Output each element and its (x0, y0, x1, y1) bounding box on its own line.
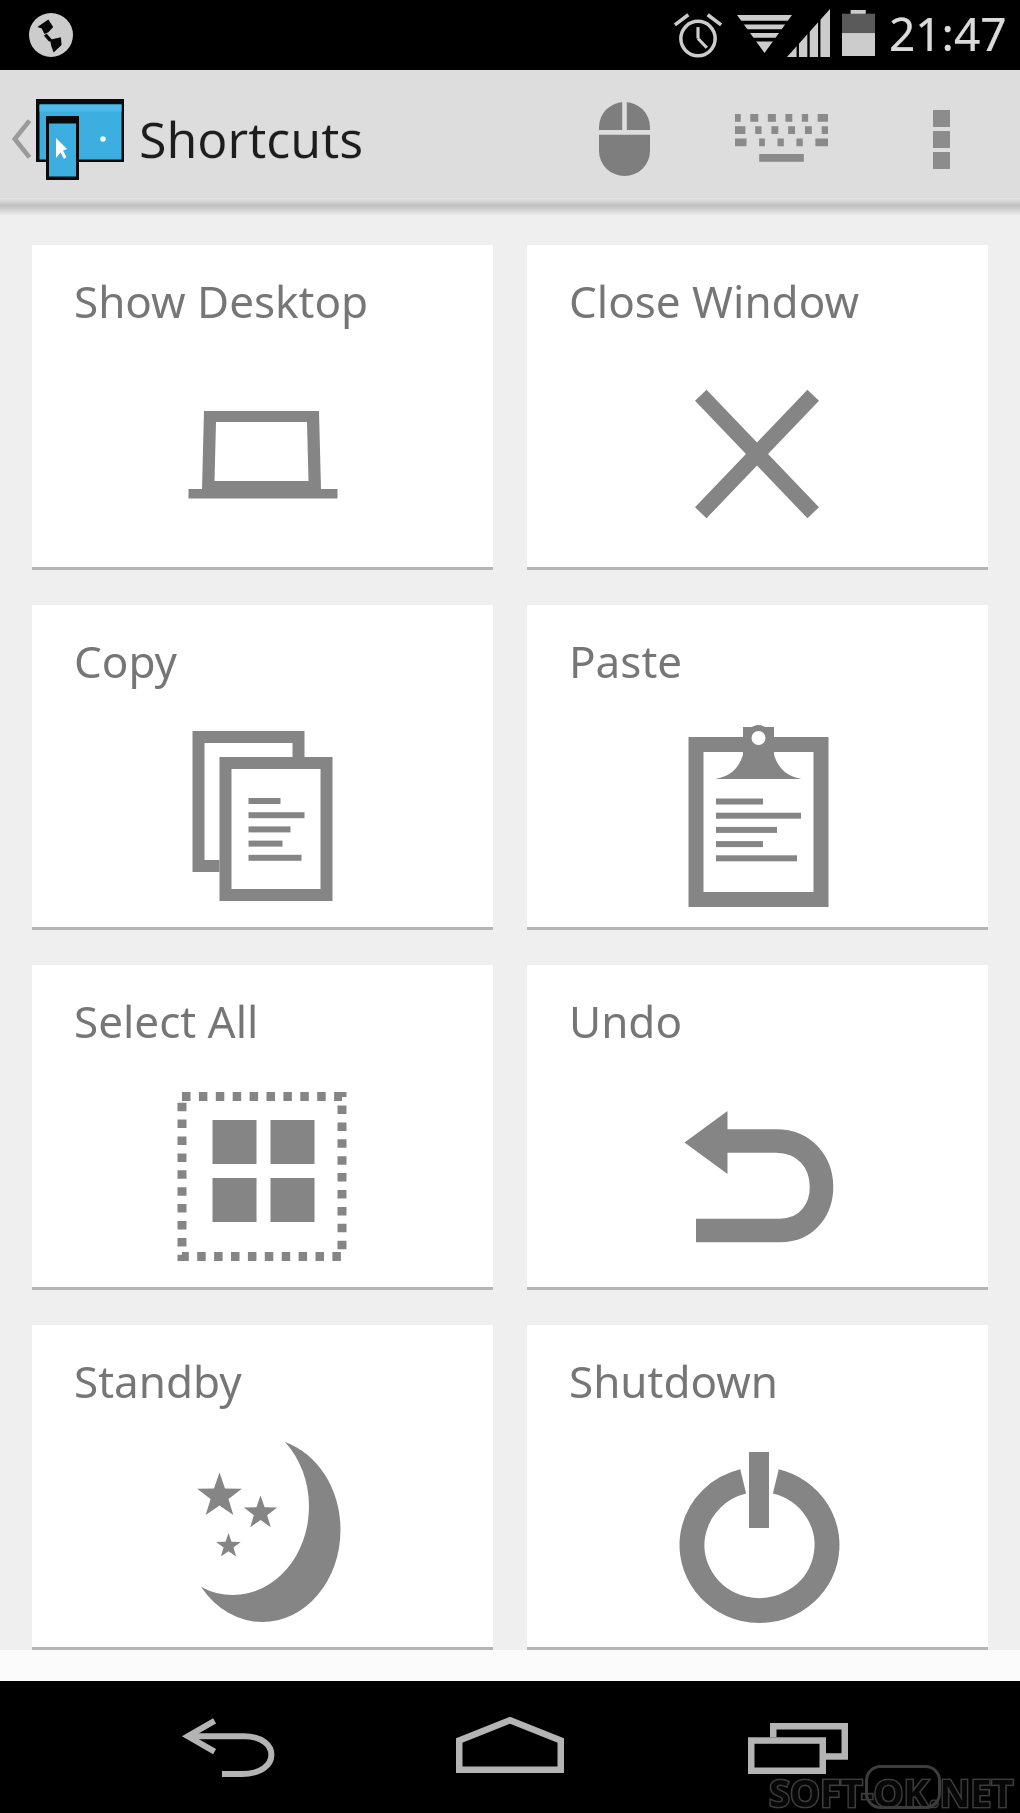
button[interactable]: Shutdown (527, 1325, 988, 1650)
staticText: 21:47 (889, 2, 1007, 65)
staticText: Shortcuts (139, 105, 364, 173)
staticText: Undo (569, 991, 683, 1051)
button[interactable]: Recent apps (708, 1681, 888, 1813)
staticText: Paste (569, 631, 683, 691)
staticText: Shutdown (569, 1351, 778, 1411)
staticText: Close Window (569, 271, 859, 331)
button[interactable]: Undo (527, 965, 988, 1290)
staticText: Standby (74, 1351, 242, 1411)
button[interactable]: Home (416, 1681, 604, 1813)
button[interactable]: Standby (32, 1325, 493, 1650)
button[interactable]: Back (147, 1681, 319, 1813)
button[interactable]: Copy (32, 605, 493, 930)
button[interactable]: Navigate up (0, 70, 135, 198)
button[interactable]: More options (886, 75, 996, 203)
staticText: SOFT-OK.NET (769, 1766, 1014, 1813)
button[interactable]: Select All (32, 965, 493, 1290)
button[interactable]: Show Desktop (32, 245, 493, 570)
staticText: Select All (74, 991, 259, 1051)
staticText: SOFT-OK.NET (769, 1766, 1014, 1813)
button[interactable]: Paste (527, 605, 988, 930)
staticText: Copy (74, 631, 178, 691)
button[interactable]: Mouse (564, 75, 684, 203)
button[interactable]: Keyboard (711, 75, 851, 203)
staticText: Show Desktop (74, 271, 369, 331)
button[interactable]: Close Window (527, 245, 988, 570)
